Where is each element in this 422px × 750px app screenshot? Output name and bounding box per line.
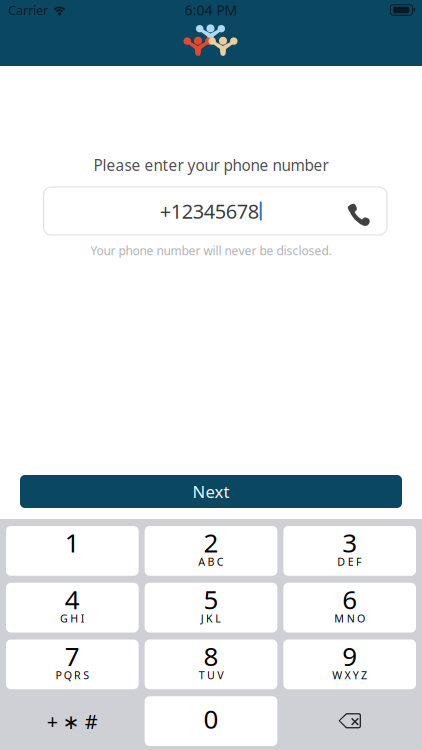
- staticText: U: [207, 668, 215, 682]
- staticText: 3: [342, 525, 357, 560]
- button[interactable]: 0: [145, 696, 277, 746]
- staticText: S: [83, 668, 89, 682]
- staticText: F: [356, 554, 362, 569]
- staticText: W: [332, 668, 342, 682]
- button[interactable]: 2: [145, 526, 277, 576]
- staticText: Please enter your phone number: [93, 155, 328, 175]
- staticText: 1: [65, 525, 80, 560]
- staticText: + ∗ #: [47, 707, 98, 735]
- staticText: 9: [342, 638, 357, 674]
- staticText: M: [334, 611, 344, 625]
- staticText: +12345678: [160, 197, 259, 225]
- staticText: O: [357, 611, 365, 625]
- staticText: P: [55, 668, 61, 682]
- staticText: 6: [342, 581, 357, 617]
- button[interactable]: 7: [6, 639, 139, 689]
- button[interactable]: 5: [145, 583, 277, 633]
- staticText: J: [201, 611, 204, 625]
- staticText: L: [215, 611, 221, 625]
- staticText: X: [344, 668, 350, 682]
- staticText: 0: [203, 701, 218, 736]
- staticText: A: [198, 554, 205, 569]
- staticText: Your phone number will never be disclose…: [90, 242, 331, 259]
- button[interactable]: Next: [0, 475, 422, 508]
- button[interactable]: 8: [145, 639, 277, 689]
- staticText: Q: [64, 668, 72, 682]
- staticText: Next: [192, 480, 229, 503]
- staticText: 5: [203, 581, 218, 617]
- staticText: Z: [361, 668, 367, 682]
- staticText: V: [217, 668, 223, 682]
- staticText: H: [70, 611, 78, 625]
- button[interactable]: 1: [6, 526, 139, 576]
- button[interactable]: 4: [6, 583, 139, 633]
- staticText: G: [60, 611, 68, 625]
- button[interactable]: 9: [283, 639, 416, 689]
- staticText: 6:04 PM: [184, 0, 237, 20]
- staticText: C: [217, 554, 224, 569]
- staticText: 8: [203, 638, 218, 674]
- staticText: 7: [65, 638, 80, 674]
- button[interactable]: + ∗ #: [6, 696, 139, 746]
- staticText: Y: [353, 668, 359, 682]
- staticText: K: [206, 611, 213, 625]
- staticText: T: [199, 668, 205, 682]
- staticText: Carrier: [8, 1, 48, 19]
- staticText: 4: [65, 581, 80, 617]
- staticText: D: [337, 554, 345, 569]
- staticText: R: [74, 668, 81, 682]
- staticText: I: [81, 611, 85, 625]
- staticText: 2: [203, 525, 218, 560]
- button[interactable]: Delete: [283, 696, 416, 746]
- staticText: E: [348, 554, 354, 569]
- button[interactable]: 6: [283, 583, 416, 633]
- button[interactable]: 3: [283, 526, 416, 576]
- staticText: B: [207, 554, 214, 569]
- staticText: N: [347, 611, 355, 625]
